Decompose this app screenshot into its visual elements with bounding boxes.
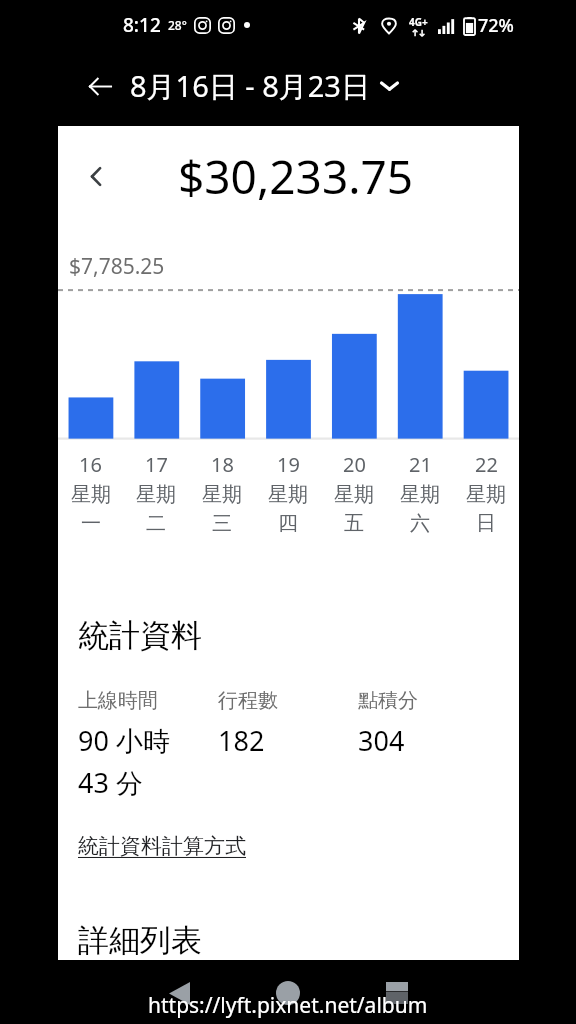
staticText: $30,233.75 — [178, 145, 414, 208]
button[interactable]: Previous week — [72, 153, 118, 199]
staticText: 星期 — [466, 482, 506, 507]
staticText: 4G+ — [409, 15, 428, 29]
staticText: 統計資料計算方式 — [78, 833, 246, 859]
staticText: 19 — [277, 451, 300, 478]
staticText: 28° — [168, 17, 187, 33]
staticText: $7,785.25 — [69, 252, 165, 281]
button[interactable]: Recent apps — [367, 963, 427, 1023]
staticText: 星期 — [136, 482, 176, 507]
staticText: 18 — [211, 451, 234, 478]
staticText: 8月16日 - 8月23日 — [130, 66, 370, 106]
staticText: 21 — [409, 451, 432, 478]
staticText: 六 — [410, 511, 430, 536]
staticText: 三 — [212, 511, 232, 536]
button[interactable]: 統計資料計算方式 — [78, 833, 246, 859]
button[interactable]: 8月16日 - 8月23日 — [130, 66, 399, 106]
staticText: 星期 — [268, 482, 308, 507]
staticText: 統計資料 — [78, 616, 202, 655]
staticText: 日 — [476, 511, 496, 536]
staticText: 72% — [478, 13, 514, 38]
staticText: 四 — [278, 511, 298, 536]
staticText: 90 小時 43 分 — [78, 722, 170, 801]
staticText: 五 — [344, 511, 364, 536]
staticText: 182 — [218, 722, 265, 759]
staticText: 304 — [358, 722, 405, 759]
staticText: https://lyft.pixnet.net/album — [148, 991, 428, 1020]
staticText: 16 — [79, 451, 102, 478]
staticText: 詳細列表 — [78, 921, 202, 960]
staticText: 點積分 — [358, 688, 418, 713]
staticText: 星期 — [334, 482, 374, 507]
staticText: 22 — [475, 451, 498, 478]
button[interactable]: Back — [78, 64, 122, 108]
staticText: 二 — [146, 511, 166, 536]
staticText: 行程數 — [218, 688, 278, 713]
staticText: 星期 — [202, 482, 242, 507]
button[interactable]: Home — [258, 963, 318, 1023]
staticText: 上線時間 — [78, 688, 158, 713]
staticText: 17 — [145, 451, 168, 478]
staticText: 星期 — [71, 482, 111, 507]
staticText: 星期 — [400, 482, 440, 507]
staticText: 一 — [81, 511, 101, 536]
button[interactable]: Back — [149, 963, 209, 1023]
staticText: 20 — [343, 451, 366, 478]
staticText: 8:12 — [123, 12, 161, 38]
